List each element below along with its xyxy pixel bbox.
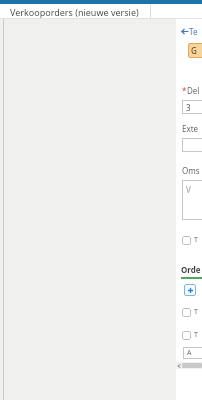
staticText: Verkooporders (nieuwe versie): [10, 6, 139, 18]
staticText: G: [191, 45, 197, 56]
button[interactable]: Toggle option: [176, 234, 202, 246]
button[interactable]: G: [188, 43, 202, 58]
staticText: *: [182, 85, 187, 96]
staticText: T: [194, 235, 198, 245]
staticText: Exte: [182, 123, 199, 134]
staticText: A: [187, 348, 192, 358]
staticText: T: [194, 330, 198, 340]
staticText: Del: [187, 85, 200, 96]
button[interactable]: 3: [182, 100, 202, 114]
staticText: V: [186, 184, 191, 195]
button[interactable]: Te: [176, 26, 202, 37]
staticText: Orderr: [181, 264, 202, 275]
button[interactable]: Toggle option: [176, 306, 202, 318]
button[interactable]: [182, 138, 202, 152]
staticText: Te: [189, 26, 198, 37]
button[interactable]: Add order line: [184, 284, 196, 296]
staticText: T: [194, 307, 198, 317]
button[interactable]: V: [182, 180, 202, 220]
button[interactable]: Scroll left: [176, 362, 182, 369]
button[interactable]: Toggle option: [176, 329, 202, 341]
button[interactable]: Verkooporders (nieuwe versie): [0, 4, 150, 19]
staticText: 3: [186, 102, 191, 113]
staticText: Oms: [182, 165, 200, 176]
button[interactable]: A: [183, 347, 202, 359]
